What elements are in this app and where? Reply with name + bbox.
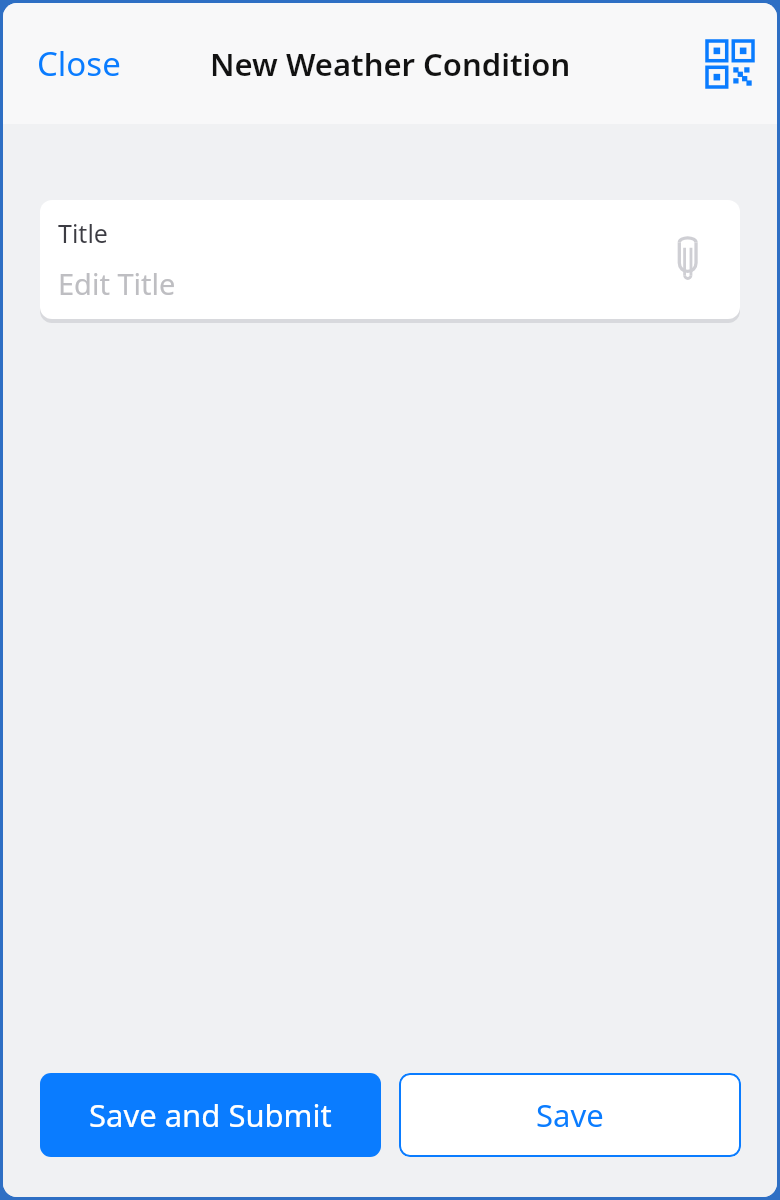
staticText: Title xyxy=(58,216,108,250)
staticText: New Weather Condition xyxy=(210,43,571,85)
button[interactable]: Close xyxy=(25,33,133,94)
staticText: Save xyxy=(536,1094,604,1136)
button[interactable]: Save xyxy=(399,1073,741,1157)
staticText: Edit Title xyxy=(58,264,176,303)
button[interactable]: Scan QR code xyxy=(701,35,759,93)
button[interactable]: Title xyxy=(40,200,740,319)
staticText: Close xyxy=(37,41,121,86)
button[interactable]: Save and Submit xyxy=(40,1073,381,1157)
staticText: Save and Submit xyxy=(89,1094,332,1136)
button[interactable]: Attach file xyxy=(662,233,716,287)
